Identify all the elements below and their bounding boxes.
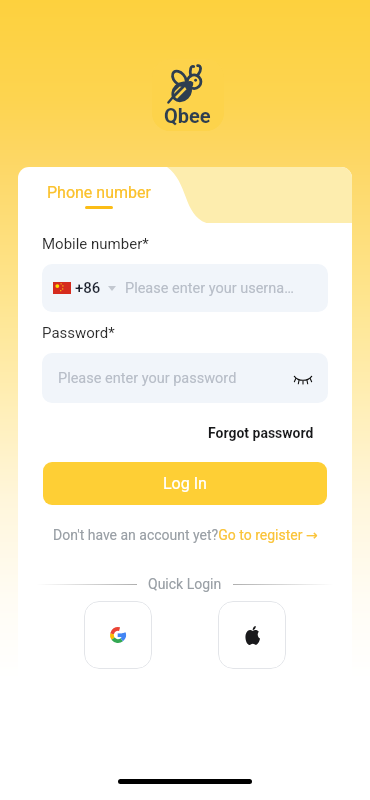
staticText: Please enter your password	[58, 370, 237, 387]
staticText: Qbee	[164, 104, 211, 127]
button[interactable]: Show password	[292, 367, 314, 389]
button[interactable]: +86	[42, 264, 328, 312]
staticText: Password*	[42, 324, 115, 342]
button[interactable]: Please enter your password	[42, 353, 328, 403]
staticText: Don't have an account yet?Go to register…	[53, 527, 318, 543]
staticText: Quick Login	[148, 576, 222, 592]
staticText: Forgot password	[208, 425, 314, 441]
staticText: Mobile number*	[42, 235, 149, 253]
staticText: Log In	[163, 474, 207, 493]
button[interactable]: Sign in with Google	[84, 601, 152, 669]
button[interactable]: Don't have an account yet?Go to register…	[53, 527, 318, 543]
button[interactable]: Log In	[43, 462, 327, 505]
staticText: +86	[75, 279, 101, 297]
button[interactable]: Forgot password	[208, 425, 314, 441]
staticText: Phone number	[47, 183, 151, 202]
button[interactable]: Qbee logo	[152, 59, 224, 131]
button[interactable]: Phone number	[47, 183, 151, 209]
button[interactable]: Sign in with Apple	[218, 601, 286, 669]
staticText: Please enter your userna…	[125, 280, 294, 297]
